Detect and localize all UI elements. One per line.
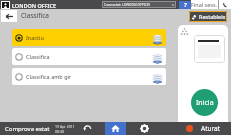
staticText: LONDON OFFICE [12, 2, 57, 9]
button[interactable]: Classifica [12, 48, 166, 65]
staticText: Comprova estat [5, 125, 50, 133]
button[interactable]: Inactiu [12, 29, 166, 46]
button[interactable]: Restableix [189, 11, 227, 22]
button[interactable]: Classifica amb gir [12, 68, 166, 85]
staticText: Connectat: LONDON OFFICE) [104, 2, 150, 7]
button[interactable]: Back [76, 122, 98, 135]
button[interactable]: Final sess. [191, 0, 218, 9]
button[interactable]: Call [219, 0, 231, 9]
staticText: Aturat [201, 124, 221, 133]
staticText: Inactiu [26, 34, 44, 41]
staticText: ? [184, 1, 187, 9]
staticText: Inicia [196, 98, 214, 108]
button[interactable]: Settings [133, 122, 155, 135]
button[interactable]: Inicia [191, 89, 218, 116]
staticText: Classifica [26, 53, 50, 60]
button[interactable]: Connectat: LONDON OFFICE) [102, 1, 176, 8]
button[interactable]: Help [179, 1, 191, 9]
staticText: Final sess. [191, 1, 218, 8]
staticText: Restableix [199, 13, 226, 20]
staticText: 08:38 [55, 129, 64, 134]
button[interactable]: Back [1, 10, 17, 22]
button[interactable]: Home [105, 122, 126, 135]
staticText: 19 Apr 2011 [55, 124, 75, 129]
button[interactable]: Comprova estat [5, 125, 50, 133]
staticText: Classifica [21, 11, 50, 20]
staticText: Classifica amb gir [26, 73, 72, 80]
